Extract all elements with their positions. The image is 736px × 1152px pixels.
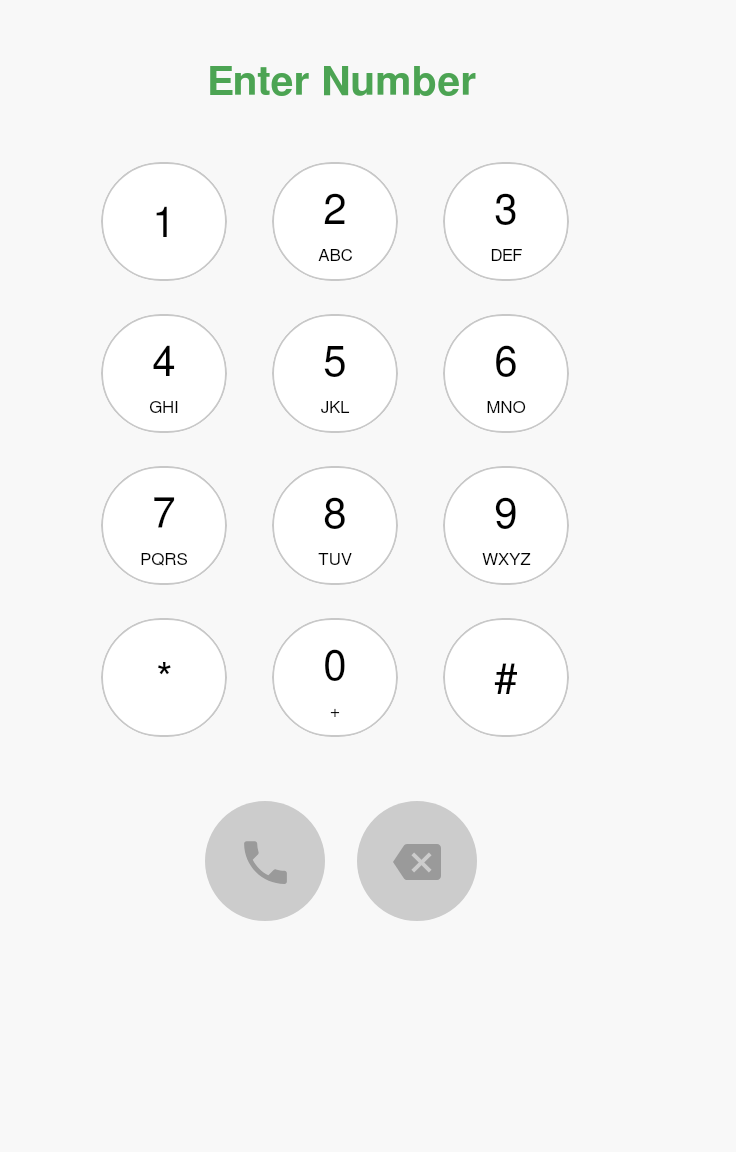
- staticText: *: [156, 659, 173, 701]
- staticText: PQRS: [140, 551, 188, 568]
- button[interactable]: 1: [101, 162, 227, 281]
- button[interactable]: 3: [443, 162, 569, 281]
- staticText: JKL: [320, 399, 350, 416]
- button[interactable]: Call: [205, 801, 325, 921]
- button[interactable]: 5: [272, 314, 398, 433]
- button[interactable]: 2: [272, 162, 398, 281]
- staticText: Enter Number: [207, 62, 477, 103]
- staticText: GHI: [149, 399, 179, 416]
- staticText: 3: [494, 190, 518, 232]
- staticText: 8: [323, 494, 347, 536]
- staticText: 5: [323, 342, 347, 384]
- staticText: 0: [323, 646, 347, 688]
- button[interactable]: 7: [101, 466, 227, 585]
- staticText: +: [330, 703, 340, 720]
- button[interactable]: 6: [443, 314, 569, 433]
- button[interactable]: Backspace: [357, 801, 477, 921]
- staticText: 9: [494, 494, 518, 536]
- staticText: 7: [152, 494, 176, 536]
- button[interactable]: 9: [443, 466, 569, 585]
- button[interactable]: #: [443, 618, 569, 737]
- button[interactable]: 8: [272, 466, 398, 585]
- staticText: DEF: [490, 247, 523, 264]
- staticText: WXYZ: [482, 551, 531, 568]
- button[interactable]: *: [101, 618, 227, 737]
- staticText: 6: [494, 342, 518, 384]
- button[interactable]: 0: [272, 618, 398, 737]
- staticText: 4: [152, 342, 176, 384]
- staticText: #: [494, 659, 518, 701]
- staticText: 1: [152, 203, 176, 245]
- button[interactable]: 4: [101, 314, 227, 433]
- staticText: ABC: [318, 247, 353, 264]
- staticText: MNO: [486, 399, 526, 416]
- staticText: 2: [323, 190, 347, 232]
- staticText: TUV: [318, 551, 352, 568]
